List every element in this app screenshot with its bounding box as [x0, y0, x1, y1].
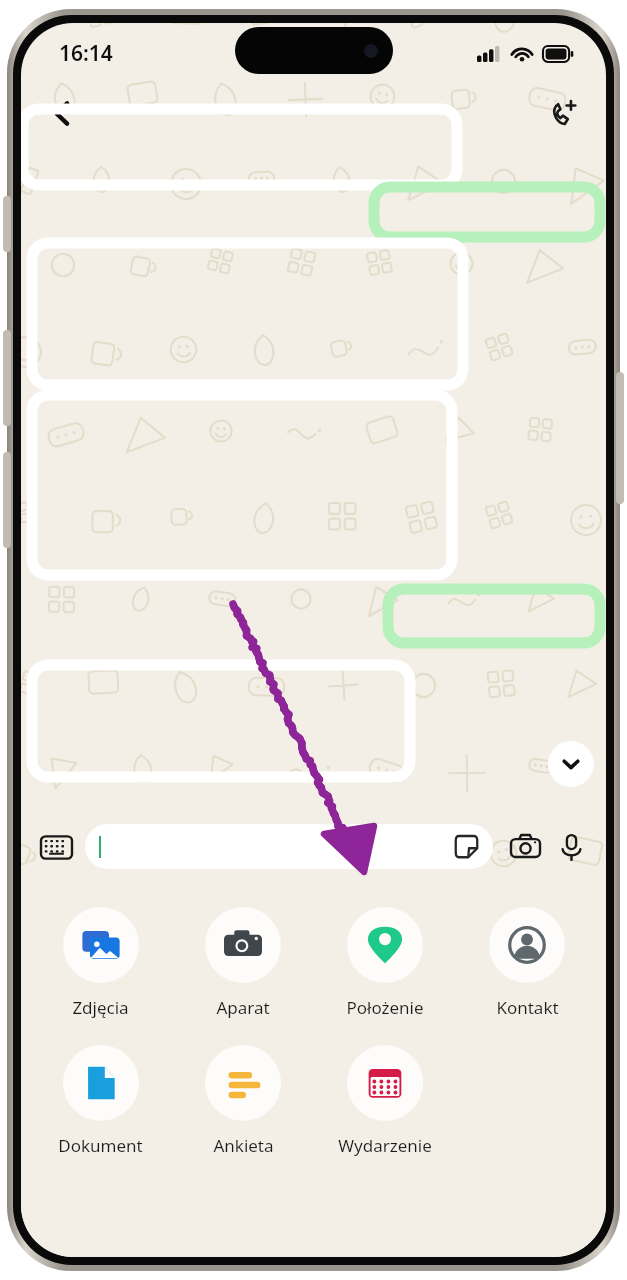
staticText: Kontakt	[496, 996, 559, 1019]
button[interactable]	[32, 243, 463, 385]
button[interactable]: Kontakt	[456, 907, 598, 1019]
staticText: Położenie	[346, 996, 424, 1019]
button[interactable]: Scroll to bottom	[548, 741, 594, 787]
staticText: Wydarzenie	[338, 1134, 432, 1157]
button[interactable]: Aparat	[172, 907, 314, 1019]
staticText: Zdjęcia	[72, 996, 129, 1019]
button[interactable]: Keyboard	[35, 826, 77, 868]
staticText: Dokument	[58, 1134, 143, 1157]
button[interactable]: Dokument	[29, 1045, 172, 1157]
button[interactable]	[85, 824, 493, 869]
staticText: Aparat	[216, 996, 270, 1019]
button[interactable]: Camera	[504, 826, 546, 868]
button[interactable]: Wydarzenie	[314, 1045, 456, 1157]
button[interactable]: Położenie	[314, 907, 456, 1019]
button[interactable]	[388, 589, 600, 643]
button[interactable]: Add call	[538, 88, 588, 138]
staticText: Ankieta	[213, 1134, 274, 1157]
button[interactable]: Back	[37, 88, 87, 138]
button[interactable]	[32, 665, 410, 777]
button[interactable]	[23, 109, 457, 185]
button[interactable]: Zdjęcia	[29, 907, 172, 1019]
staticText: 16:14	[59, 39, 113, 68]
button[interactable]: Voice message	[550, 826, 592, 868]
button[interactable]	[32, 395, 452, 575]
button[interactable]	[374, 187, 600, 237]
button[interactable]: Ankieta	[172, 1045, 314, 1157]
